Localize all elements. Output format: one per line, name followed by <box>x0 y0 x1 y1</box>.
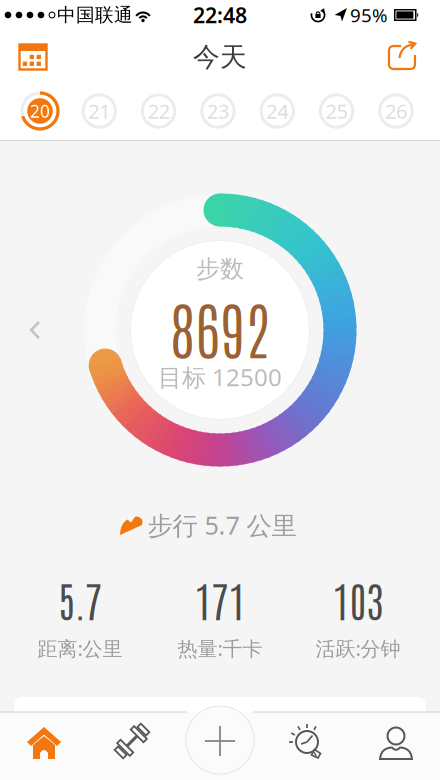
button[interactable]: 24 <box>257 91 297 131</box>
staticText: 目标 12500 <box>158 361 282 393</box>
button[interactable]: 首页 <box>14 715 74 771</box>
staticText: 23 <box>207 98 229 124</box>
staticText: 21 <box>88 98 110 124</box>
staticText: 20 <box>30 99 50 122</box>
button[interactable]: 23 <box>198 91 238 131</box>
staticText: 25 <box>326 98 348 124</box>
staticText: 今天 <box>193 41 247 73</box>
button[interactable]: 日历 <box>11 35 55 79</box>
button[interactable]: 20 <box>20 91 60 131</box>
staticText: 22:48 <box>193 1 247 29</box>
button[interactable]: 分享 <box>382 35 426 79</box>
staticText: 26 <box>385 98 407 124</box>
staticText: 171 <box>194 572 245 626</box>
button[interactable]: 21 <box>79 91 119 131</box>
button[interactable]: 锻炼 <box>102 715 162 771</box>
staticText: 95% <box>350 3 388 27</box>
staticText: 步数 <box>196 254 244 284</box>
button[interactable]: 前一天 <box>26 318 50 342</box>
button[interactable]: 发现 <box>278 715 338 771</box>
button[interactable]: 添加 <box>186 707 254 775</box>
staticText: 24 <box>266 98 288 124</box>
button[interactable]: 我的 <box>366 715 426 771</box>
staticText: 中国联通 <box>57 3 133 26</box>
staticText: 5.7 <box>58 572 102 626</box>
button[interactable]: 22 <box>139 91 179 131</box>
staticText: 22 <box>148 98 170 124</box>
staticText: 热量:千卡 <box>177 635 262 662</box>
staticText: 8692 <box>170 287 270 367</box>
staticText: 活跃:分钟 <box>315 635 400 662</box>
button[interactable]: 26 <box>376 91 416 131</box>
staticText: 距离:公里 <box>37 635 122 662</box>
button[interactable]: 25 <box>317 91 357 131</box>
staticText: 步行 5.7 公里 <box>147 508 296 542</box>
staticText: 103 <box>332 572 383 626</box>
